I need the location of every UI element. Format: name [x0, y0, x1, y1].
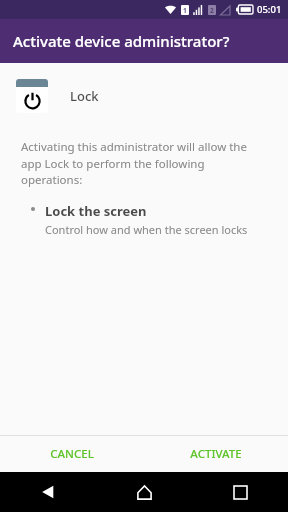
- staticText: 05:01: [257, 3, 282, 16]
- staticText: Activate device administrator?: [13, 31, 230, 51]
- staticText: ACTIVATE: [190, 446, 242, 462]
- staticText: Lock: [70, 87, 99, 105]
- staticText: CANCEL: [50, 446, 94, 462]
- button[interactable]: Recents: [192, 472, 288, 512]
- button[interactable]: CANCEL: [0, 436, 144, 472]
- staticText: 2: [210, 6, 214, 15]
- staticText: Control how and when the screen locks: [45, 222, 248, 237]
- staticText: Activating this administrator will allow…: [21, 139, 267, 187]
- button[interactable]: ACTIVATE: [144, 436, 288, 472]
- staticText: 1: [183, 6, 187, 15]
- staticText: Lock the screen: [45, 202, 147, 220]
- button[interactable]: Home: [96, 472, 192, 512]
- button[interactable]: Back: [0, 472, 96, 512]
